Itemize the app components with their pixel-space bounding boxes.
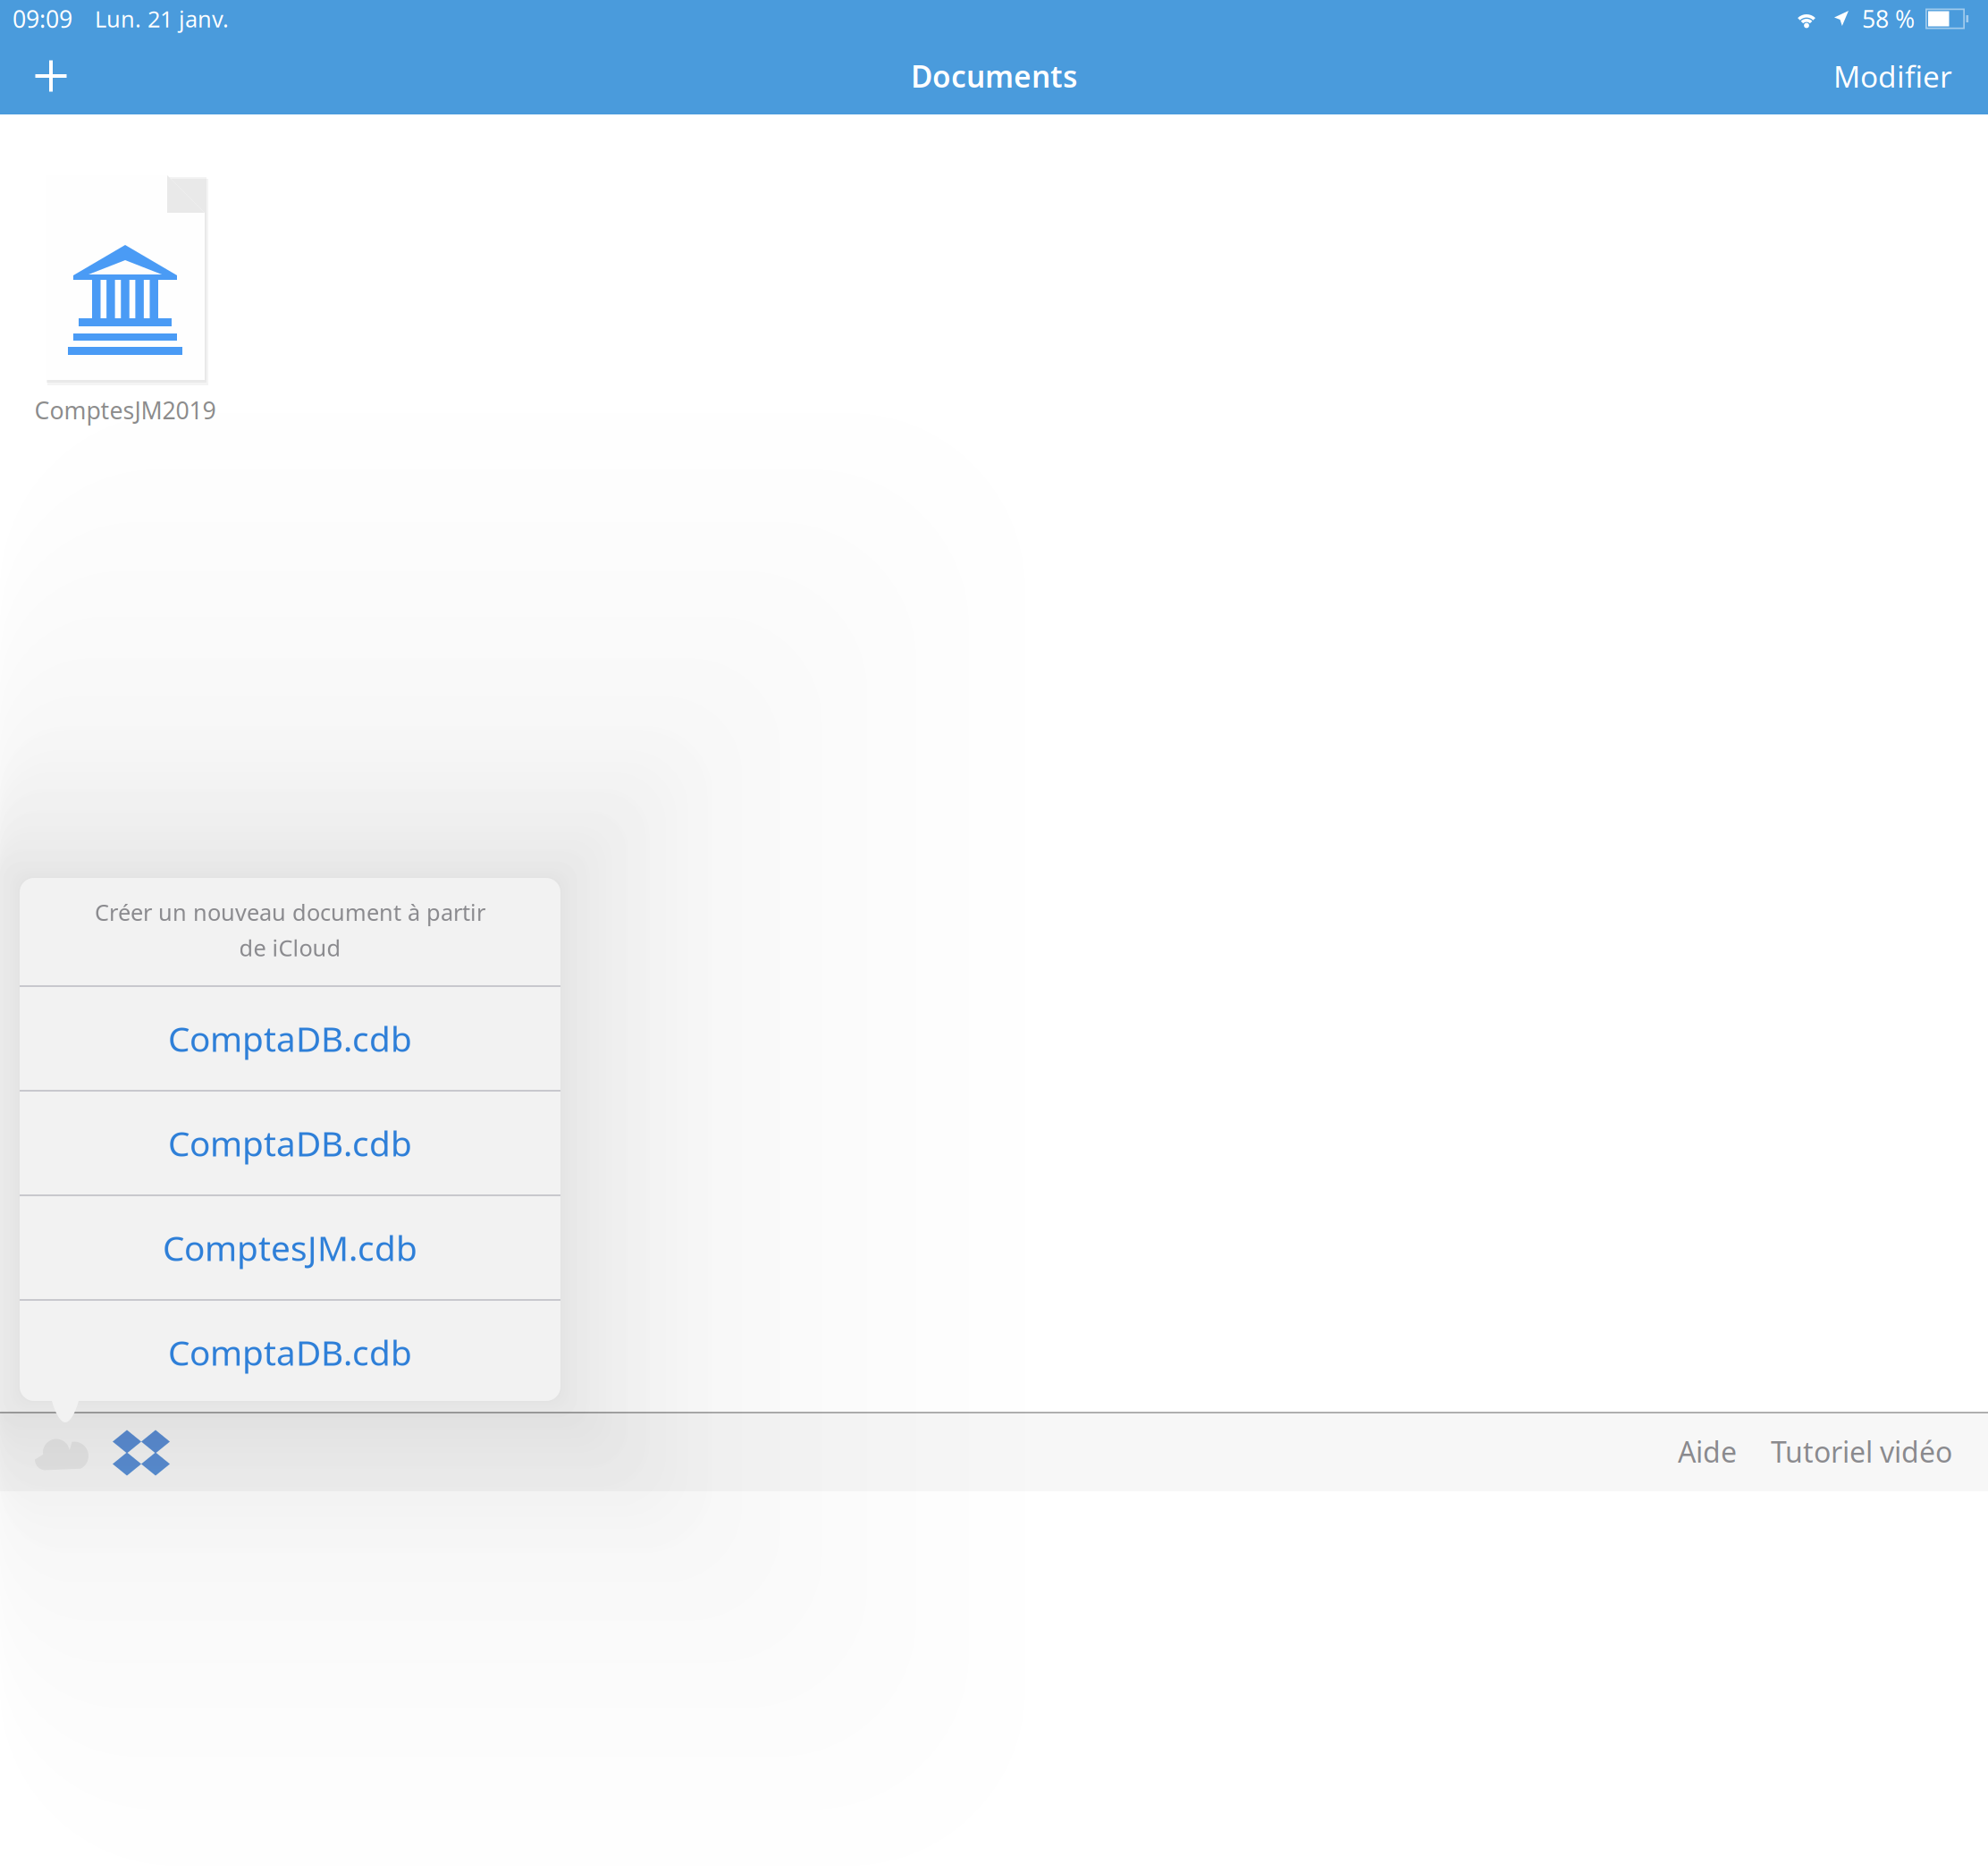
button[interactable]: ComptaDB.cdb	[20, 1301, 560, 1404]
staticText: ComptaDB.cdb	[168, 1015, 412, 1061]
button[interactable]: Modifier	[1817, 38, 1968, 114]
staticText: ComptesJM.cdb	[163, 1225, 417, 1271]
staticText: Documents	[911, 56, 1077, 96]
button[interactable]: Aide	[1678, 1413, 1737, 1490]
button[interactable]: Dropbox	[104, 1413, 179, 1490]
staticText: Modifier	[1833, 56, 1952, 96]
staticText: ComptaDB.cdb	[168, 1120, 412, 1166]
button[interactable]: ComptaDB.cdb	[20, 987, 560, 1090]
staticText: Lun. 21 janv.	[95, 4, 229, 34]
staticText: 58 %	[1862, 3, 1915, 35]
button[interactable]: Nouveau document	[12, 38, 90, 114]
staticText: 09:09	[13, 3, 72, 35]
button[interactable]: ComptesJM2019	[0, 175, 250, 426]
button[interactable]: ComptaDB.cdb	[20, 1092, 560, 1194]
staticText: Créer un nouveau document à partir	[95, 897, 485, 927]
button[interactable]: Tutoriel vidéo	[1771, 1413, 1952, 1490]
staticText: ComptaDB.cdb	[168, 1329, 412, 1375]
staticText: de iCloud	[239, 932, 341, 963]
staticText: Aide	[1678, 1433, 1737, 1471]
button[interactable]: ComptesJM.cdb	[20, 1196, 560, 1299]
staticText: Tutoriel vidéo	[1771, 1433, 1952, 1471]
button[interactable]: iCloud	[25, 1413, 104, 1490]
staticText: ComptesJM2019	[34, 394, 216, 426]
